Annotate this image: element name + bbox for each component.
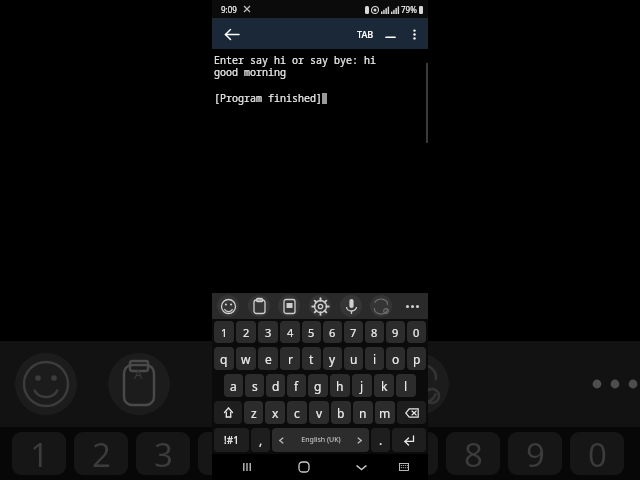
staticText: 7 xyxy=(402,432,421,475)
staticText: 5 xyxy=(308,325,315,340)
button[interactable]: 8 xyxy=(365,321,384,343)
staticText: 9:09 xyxy=(221,4,237,15)
staticText: y xyxy=(329,351,336,367)
button[interactable]: j xyxy=(352,374,372,397)
button[interactable]: l xyxy=(396,374,416,397)
button[interactable]: More xyxy=(401,295,423,317)
button[interactable]: Hide keyboard xyxy=(348,454,374,480)
button[interactable]: Recents xyxy=(234,454,260,480)
staticText: c xyxy=(294,405,300,421)
button[interactable]: i xyxy=(365,347,384,370)
staticText: 8 xyxy=(464,432,483,475)
button[interactable]: 4 xyxy=(280,321,300,343)
button[interactable]: Enter xyxy=(392,428,426,452)
staticText: o xyxy=(392,351,400,367)
button[interactable]: z xyxy=(244,401,263,424)
button[interactable]: k xyxy=(374,374,394,397)
button[interactable]: Voice input xyxy=(340,295,362,317)
staticText: j xyxy=(360,378,364,394)
button[interactable]: o xyxy=(386,347,405,370)
staticText: q xyxy=(220,351,228,367)
staticText: , xyxy=(259,432,263,448)
button[interactable]: q xyxy=(214,347,234,370)
button[interactable]: b xyxy=(331,401,351,424)
staticText: p xyxy=(413,351,421,367)
button[interactable]: . xyxy=(371,428,390,452)
button[interactable]: Switch keyboard xyxy=(391,454,417,480)
staticText: a xyxy=(230,378,237,394)
staticText: e xyxy=(265,351,272,367)
button[interactable]: Home xyxy=(291,454,317,480)
staticText: g xyxy=(314,378,322,394)
button[interactable]: 0 xyxy=(407,321,426,343)
button[interactable]: g xyxy=(308,374,328,397)
button[interactable]: English (UK) xyxy=(272,428,369,452)
staticText: 6 xyxy=(329,325,336,340)
staticText: 3 xyxy=(265,325,272,340)
button[interactable]: d xyxy=(266,374,285,397)
button[interactable]: Emoji xyxy=(217,295,239,317)
staticText: f xyxy=(294,378,299,394)
staticText: m xyxy=(379,405,391,421)
button[interactable]: TAB xyxy=(353,19,378,49)
staticText: !#1 xyxy=(224,433,239,447)
button[interactable]: Back xyxy=(216,19,246,49)
button[interactable]: 9 xyxy=(386,321,405,343)
button[interactable]: Minimise xyxy=(378,22,402,46)
button[interactable]: Shift xyxy=(214,401,242,424)
button[interactable]: e xyxy=(258,347,278,370)
button[interactable]: r xyxy=(280,347,300,370)
staticText: 3 xyxy=(154,432,173,475)
staticText: TAB xyxy=(357,28,374,40)
button[interactable]: More options xyxy=(402,22,426,46)
button[interactable]: 7 xyxy=(344,321,363,343)
button[interactable]: !#1 xyxy=(214,428,249,452)
button[interactable]: w xyxy=(236,347,256,370)
staticText: 5 xyxy=(278,432,297,475)
staticText: 1 xyxy=(221,325,228,340)
button[interactable]: 3 xyxy=(258,321,278,343)
staticText: 9 xyxy=(392,325,399,340)
button[interactable]: t xyxy=(302,347,321,370)
button[interactable]: v xyxy=(309,401,329,424)
button[interactable]: p xyxy=(407,347,426,370)
staticText: t xyxy=(309,351,314,367)
staticText: h xyxy=(336,378,344,394)
staticText: A xyxy=(134,365,143,383)
button[interactable]: Settings xyxy=(309,295,331,317)
staticText: 0 xyxy=(413,325,420,340)
button[interactable]: c xyxy=(287,401,307,424)
staticText: 4 xyxy=(287,325,294,340)
button[interactable]: a xyxy=(224,374,243,397)
staticText: [Program finished] xyxy=(214,91,322,105)
staticText: 4 xyxy=(216,432,235,475)
staticText: 8 xyxy=(371,325,378,340)
staticText: l xyxy=(404,378,408,394)
button[interactable]: y xyxy=(323,347,342,370)
button[interactable]: 1 xyxy=(214,321,234,343)
staticText: 6 xyxy=(340,432,359,475)
staticText: 1 xyxy=(30,432,49,475)
button[interactable]: Clipboard xyxy=(248,295,270,317)
button[interactable]: 5 xyxy=(302,321,321,343)
button[interactable]: 2 xyxy=(236,321,256,343)
button[interactable]: s xyxy=(245,374,264,397)
button[interactable]: , xyxy=(251,428,270,452)
button[interactable]: h xyxy=(330,374,350,397)
button[interactable]: x xyxy=(265,401,285,424)
staticText: u xyxy=(350,351,358,367)
staticText: 2 xyxy=(92,432,111,475)
staticText: Enter say hi or say bye: hi good morning xyxy=(214,53,376,79)
button[interactable]: f xyxy=(287,374,306,397)
button[interactable]: u xyxy=(344,347,363,370)
button[interactable]: n xyxy=(353,401,373,424)
staticText: b xyxy=(337,405,345,421)
button[interactable]: Backspace xyxy=(397,401,426,424)
button[interactable]: Text extract xyxy=(278,295,300,317)
staticText: 79% xyxy=(401,4,417,15)
button[interactable]: Translate xyxy=(370,295,392,317)
staticText: z xyxy=(251,405,257,421)
staticText: 9 xyxy=(526,432,545,475)
button[interactable]: 6 xyxy=(323,321,342,343)
button[interactable]: m xyxy=(375,401,395,424)
